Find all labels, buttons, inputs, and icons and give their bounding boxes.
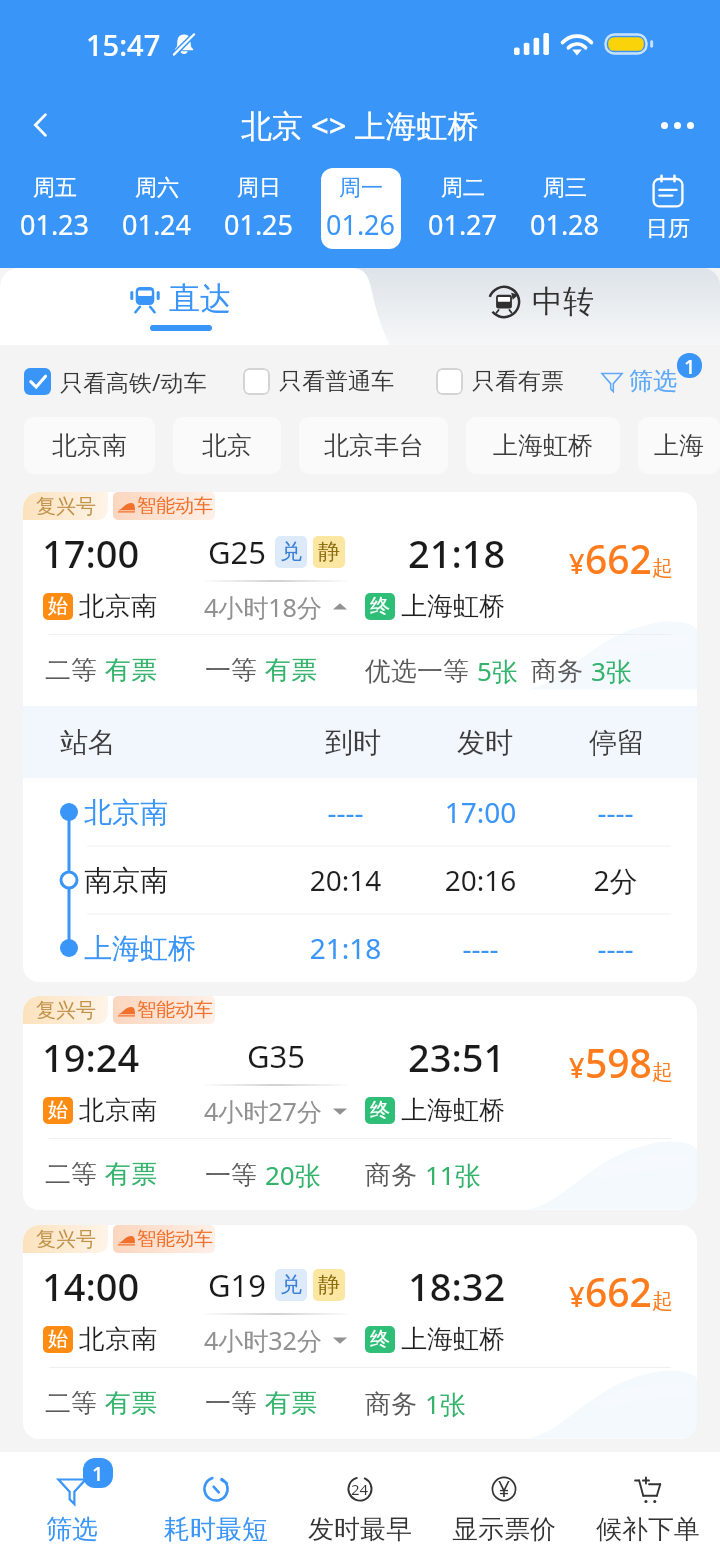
button[interactable]: 直达 <box>0 268 360 345</box>
staticText: 上海虹桥 <box>401 590 505 623</box>
button[interactable]: 周六 <box>117 168 197 249</box>
button[interactable]: 上海 <box>638 417 720 474</box>
staticText: 01.23 <box>20 206 90 243</box>
button[interactable]: 周一 <box>321 168 401 249</box>
staticText: 有票 <box>105 1387 157 1420</box>
button[interactable]: 只看普通车 <box>243 367 394 396</box>
staticText: 智能动车 <box>137 1227 213 1251</box>
staticText: 二等 <box>45 1158 97 1191</box>
button[interactable]: 北京南 <box>24 417 155 474</box>
staticText: 北京丰台 <box>324 430 424 461</box>
button[interactable]: 北京 <box>173 417 281 474</box>
staticText: ¥ <box>498 1475 511 1504</box>
button[interactable]: 周五 <box>15 168 95 249</box>
staticText: 静 <box>318 538 340 566</box>
button[interactable]: 候补下单 <box>576 1452 720 1565</box>
button[interactable]: 耗时最短 <box>144 1452 288 1565</box>
button[interactable]: 复兴号 <box>23 1225 697 1439</box>
staticText: 耗时最短 <box>164 1513 268 1546</box>
button[interactable]: 只看高铁/动车 <box>24 366 207 397</box>
button[interactable]: 周二 <box>423 168 503 249</box>
staticText: 始 <box>48 1098 68 1123</box>
staticText: 17:00 <box>413 793 548 831</box>
staticText: 上海虹桥 <box>401 1323 505 1356</box>
button[interactable]: Back <box>12 96 70 154</box>
staticText: 上海虹桥 <box>493 430 593 461</box>
staticText: 站名 <box>60 725 287 760</box>
staticText: ---- <box>413 929 548 967</box>
staticText: 二等 <box>45 1387 97 1420</box>
button[interactable]: 日历 <box>616 162 720 254</box>
button[interactable]: 周三 <box>525 168 605 249</box>
staticText: 周一 <box>339 174 383 202</box>
button[interactable]: 周日 <box>219 168 299 249</box>
staticText: 21:18 <box>278 929 413 967</box>
staticText: 17:00 <box>42 527 140 579</box>
button[interactable]: 24 <box>288 1452 432 1565</box>
staticText: 24 <box>351 1479 369 1499</box>
button[interactable]: 复兴号 <box>23 492 697 982</box>
staticText: 中转 <box>532 282 594 321</box>
staticText: 5张 <box>477 653 518 689</box>
staticText: 复兴号 <box>36 998 96 1023</box>
staticText: 周日 <box>237 174 281 202</box>
staticText: 北京 <box>202 430 252 461</box>
staticText: 3张 <box>591 653 632 689</box>
staticText: 662 <box>585 532 652 585</box>
staticText: 4小时18分 <box>204 590 322 624</box>
button[interactable]: ¥ <box>432 1452 576 1565</box>
staticText: 2分 <box>548 861 683 899</box>
button[interactable]: 只看有票 <box>436 367 564 396</box>
button[interactable]: 复兴号 <box>23 996 697 1210</box>
staticText: 优选一等 <box>365 655 469 688</box>
staticText: 18:32 <box>408 1260 506 1312</box>
staticText: 二等 <box>45 654 97 687</box>
staticText: 兑 <box>280 1271 302 1299</box>
staticText: 有票 <box>105 654 157 687</box>
staticText: ¥ <box>569 1278 585 1315</box>
staticText: 周二 <box>441 174 485 202</box>
staticText: 01.28 <box>530 206 600 243</box>
staticText: 周三 <box>543 174 587 202</box>
staticText: 北京南 <box>79 590 157 623</box>
staticText: 筛选 <box>629 366 677 396</box>
staticText: 停留 <box>551 725 683 760</box>
staticText: 只看普通车 <box>279 367 394 396</box>
staticText: ¥ <box>569 545 585 582</box>
button[interactable]: More options <box>648 96 706 154</box>
staticText: 北京 <> 上海虹桥 <box>241 104 479 146</box>
staticText: 662 <box>585 1265 652 1318</box>
staticText: 上海虹桥 <box>401 1094 505 1127</box>
staticText: ---- <box>548 793 683 831</box>
staticText: 只看高铁/动车 <box>60 366 207 397</box>
button[interactable]: 1 <box>0 1452 144 1565</box>
staticText: 复兴号 <box>36 1227 96 1252</box>
staticText: 4小时27分 <box>204 1094 322 1128</box>
staticText: 始 <box>48 1327 68 1352</box>
staticText: 1 <box>92 1460 104 1487</box>
staticText: 20张 <box>265 1157 321 1193</box>
staticText: 日历 <box>646 215 690 243</box>
staticText: 商务 <box>365 1388 417 1421</box>
staticText: 起 <box>652 555 673 581</box>
staticText: 4小时32分 <box>204 1323 322 1357</box>
staticText: 1 <box>684 353 696 378</box>
staticText: 北京南 <box>84 795 278 830</box>
staticText: 显示票价 <box>452 1513 556 1546</box>
button[interactable]: 中转 <box>360 268 720 345</box>
staticText: 21:18 <box>408 527 506 579</box>
staticText: 始 <box>48 594 68 619</box>
button[interactable]: 筛选 <box>601 366 677 396</box>
staticText: G19 <box>208 1264 267 1306</box>
staticText: 静 <box>318 1271 340 1299</box>
staticText: 周六 <box>135 174 179 202</box>
staticText: 01.24 <box>122 206 192 243</box>
staticText: 候补下单 <box>596 1513 700 1546</box>
staticText: 南京南 <box>84 863 278 898</box>
staticText: 北京南 <box>79 1323 157 1356</box>
staticText: 598 <box>585 1036 652 1089</box>
staticText: 智能动车 <box>137 998 213 1022</box>
staticText: 起 <box>652 1059 673 1085</box>
button[interactable]: 北京丰台 <box>299 417 448 474</box>
button[interactable]: 上海虹桥 <box>466 417 620 474</box>
